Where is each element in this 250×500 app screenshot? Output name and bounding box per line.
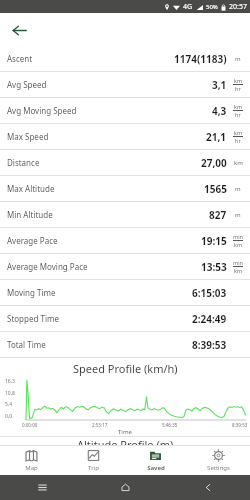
staticText: Max Speed	[7, 131, 49, 142]
staticText: 4G	[183, 2, 193, 12]
button[interactable]: Settings	[187, 446, 250, 475]
staticText: 1174(1183)	[174, 52, 227, 66]
button[interactable]: Total Time	[0, 332, 250, 358]
staticText: km	[234, 159, 243, 167]
staticText: km	[234, 267, 243, 274]
staticText: 0,0	[5, 413, 13, 420]
staticText: 13:53	[201, 260, 227, 274]
button[interactable]: Average Pace	[0, 228, 250, 254]
staticText: hr	[235, 85, 241, 92]
staticText: 16,3	[5, 378, 15, 385]
staticText: 1565	[204, 182, 227, 196]
staticText: 8:39:53	[232, 422, 248, 428]
staticText: km	[234, 77, 243, 84]
staticText: 27,00	[201, 156, 227, 170]
staticText: 2:24:49	[192, 312, 227, 326]
staticText: Average Moving Pace	[7, 261, 88, 272]
button[interactable]: Home	[84, 475, 167, 500]
staticText: Stopped Time	[7, 313, 59, 324]
button[interactable]: Max Speed	[0, 124, 250, 150]
button[interactable]: Max Altitude	[0, 176, 250, 202]
staticText: Altitude Profile (m)	[77, 437, 174, 445]
staticText: 3,1	[212, 78, 227, 92]
button[interactable]: Avg Speed	[0, 72, 250, 98]
button[interactable]: Ascent	[0, 46, 250, 72]
staticText: Ascent	[7, 53, 33, 64]
staticText: Settings	[207, 464, 230, 472]
staticText: 50%	[206, 3, 218, 11]
staticText: 10,8	[5, 390, 15, 397]
button[interactable]: Distance	[0, 150, 250, 176]
staticText: Avg Speed	[7, 79, 47, 90]
staticText: km	[234, 103, 243, 110]
button[interactable]: Moving Time	[0, 280, 250, 306]
button[interactable]: Min Altitude	[0, 202, 250, 228]
staticText: 4,3	[212, 104, 227, 118]
staticText: Distance	[7, 157, 40, 168]
staticText: 5,4	[5, 401, 13, 408]
staticText: Trip	[88, 464, 99, 472]
staticText: 0:00:00	[22, 422, 38, 428]
staticText: Avg Moving Speed	[7, 105, 77, 116]
staticText: min	[233, 259, 243, 266]
staticText: 6:15:03	[192, 286, 227, 300]
button[interactable]: Trip	[62, 446, 124, 475]
staticText: 8:39:53	[192, 338, 227, 352]
staticText: hr	[235, 137, 241, 144]
staticText: m	[235, 185, 241, 193]
staticText: 827	[209, 208, 227, 222]
staticText: km	[234, 241, 243, 248]
staticText: hr	[235, 111, 241, 118]
staticText: Min Altitude	[7, 209, 53, 220]
staticText: Max Altitude	[7, 183, 55, 194]
staticText: m	[235, 55, 241, 63]
staticText: m	[235, 211, 241, 219]
staticText: Saved	[147, 464, 165, 472]
button[interactable]: Map	[0, 446, 62, 475]
staticText: 21,1	[206, 130, 227, 144]
staticText: Map	[25, 464, 38, 472]
staticText: 19:15	[201, 234, 227, 248]
staticText: Average Pace	[7, 235, 58, 246]
button[interactable]: Recent apps	[0, 475, 84, 500]
button[interactable]: Saved	[124, 446, 187, 475]
staticText: Moving Time	[7, 287, 56, 298]
button[interactable]: Average Moving Pace	[0, 254, 250, 280]
staticText: Speed Profile (km/h)	[73, 361, 178, 376]
button[interactable]: Back	[167, 475, 250, 500]
button[interactable]: Avg Moving Speed	[0, 98, 250, 124]
button[interactable]: Back	[6, 17, 32, 43]
staticText: 2:53:17	[92, 422, 108, 428]
staticText: min	[233, 233, 243, 240]
staticText: 20:57	[229, 2, 247, 12]
staticText: km	[234, 129, 243, 136]
staticText: Total Time	[7, 339, 46, 350]
button[interactable]: Stopped Time	[0, 306, 250, 332]
staticText: 5:46:35	[162, 422, 178, 428]
staticText: Time	[118, 428, 132, 436]
